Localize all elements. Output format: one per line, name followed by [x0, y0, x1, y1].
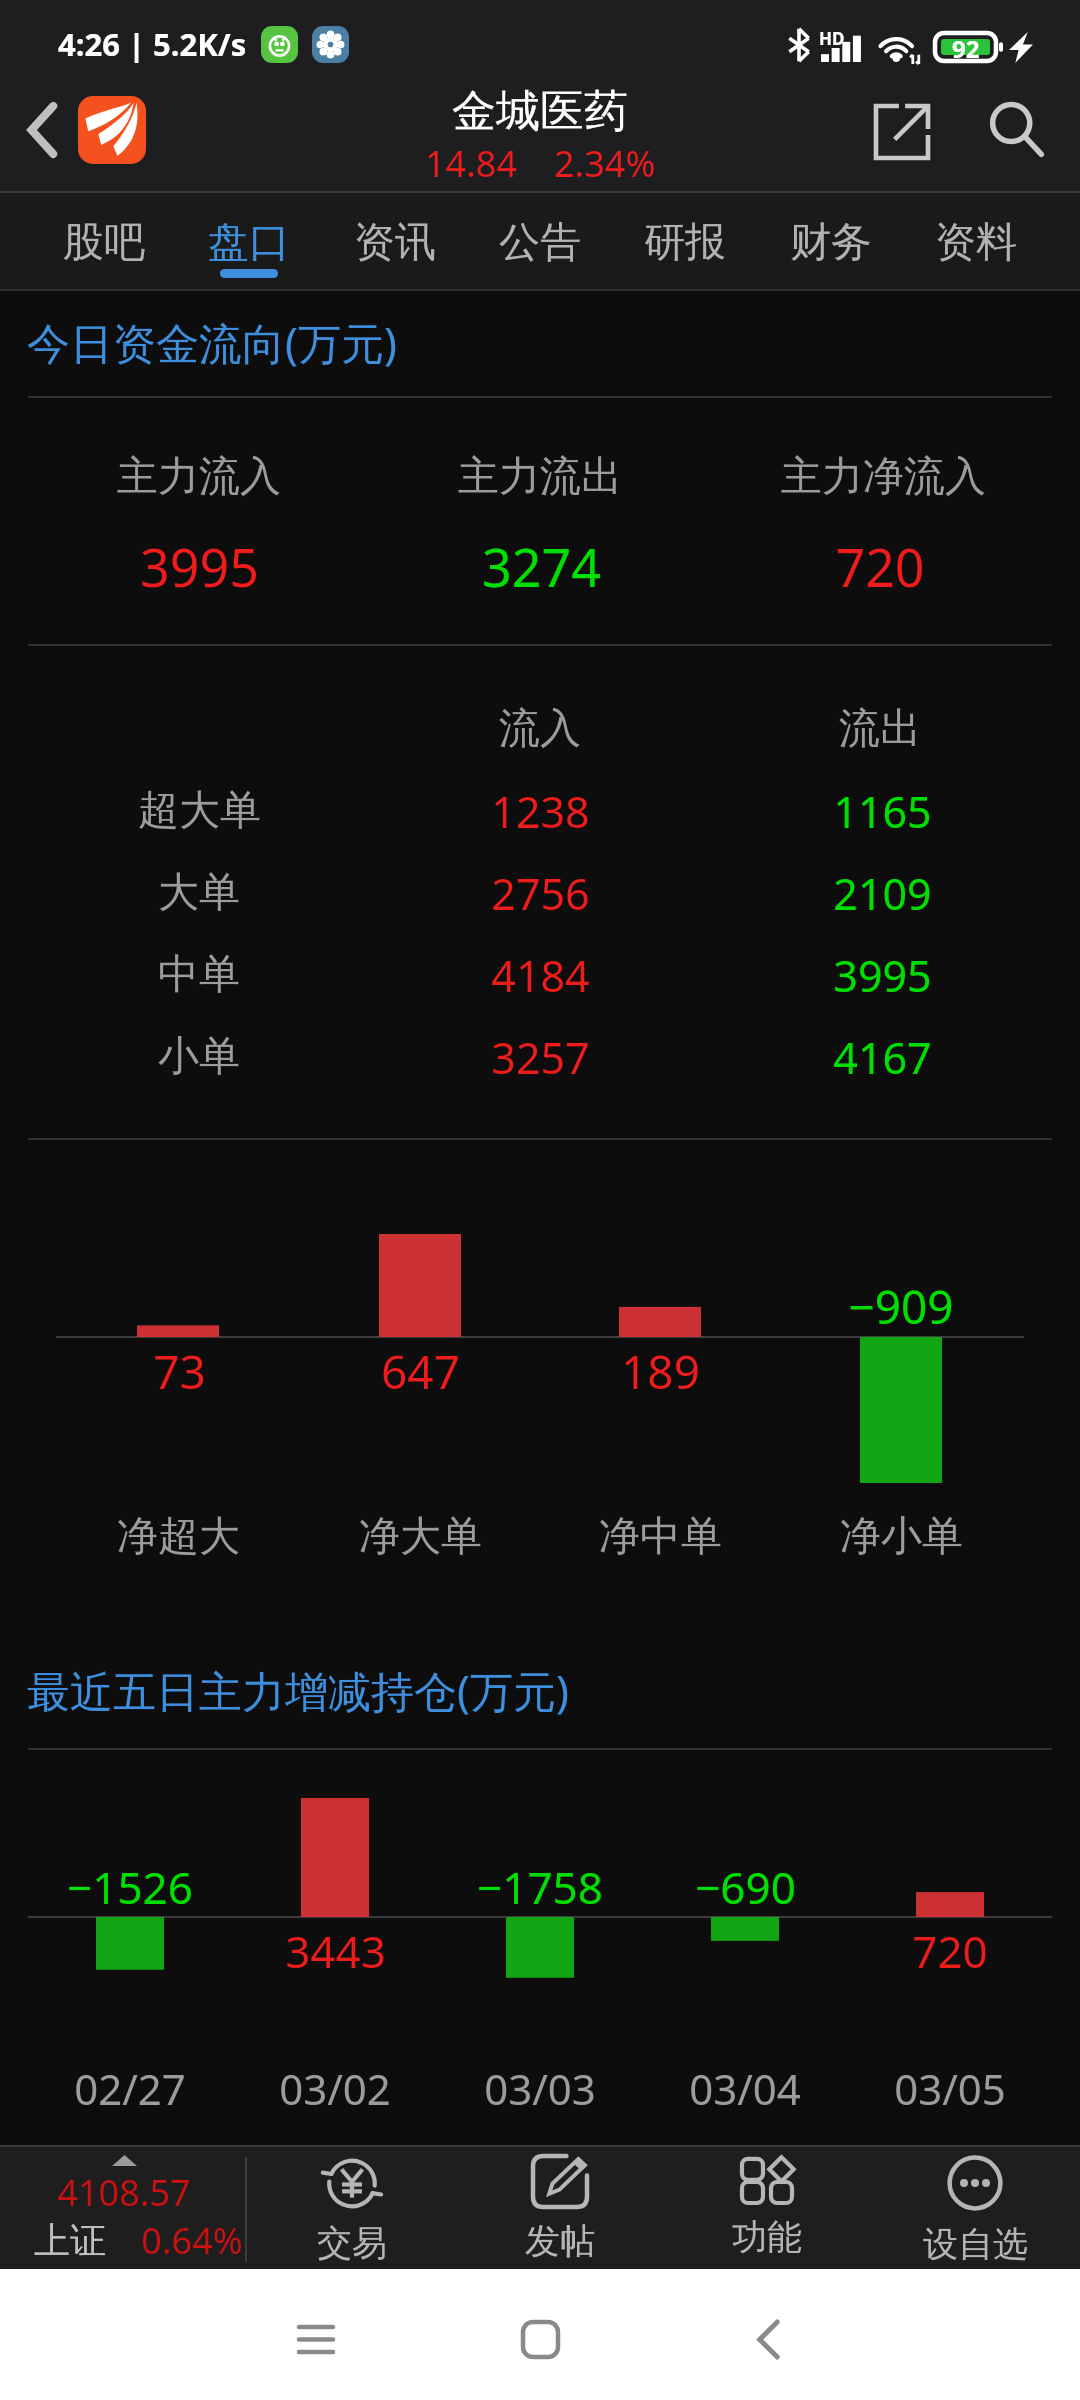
button[interactable]: Share [865, 95, 939, 169]
staticText: 4:26 | 5.2K/s [58, 23, 247, 65]
staticText: 3995 [140, 531, 259, 602]
button[interactable]: 发帖 [456, 2147, 664, 2269]
button[interactable]: 资讯 [323, 193, 467, 289]
staticText: 03/03 [484, 2060, 596, 2117]
staticText: 交易 [317, 2221, 387, 2265]
staticText: 主力流入 [117, 451, 281, 503]
button[interactable]: Recents [236, 2269, 396, 2400]
button[interactable]: 公告 [468, 193, 612, 289]
staticText: 720 [912, 1921, 988, 1981]
staticText: 发帖 [525, 2219, 595, 2263]
button[interactable]: Back [8, 95, 78, 165]
staticText: 设自选 [923, 2222, 1028, 2266]
staticText: 财务 [790, 217, 872, 269]
staticText: 720 [835, 531, 925, 602]
button[interactable]: Eastmoney [78, 96, 146, 164]
button[interactable]: Shanghai index [0, 2147, 245, 2269]
staticText: 功能 [732, 2215, 802, 2259]
staticText: −909 [848, 1275, 954, 1338]
staticText: 2.34% [554, 139, 656, 179]
staticText: 金城医药 [452, 84, 628, 139]
button[interactable]: Search [980, 93, 1054, 167]
staticText: −1526 [67, 1857, 193, 1917]
staticText: 03/02 [279, 2060, 391, 2117]
staticText: 资讯 [354, 217, 436, 269]
staticText: 03/04 [689, 2060, 801, 2117]
staticText: 647 [381, 1340, 460, 1403]
button[interactable]: 盘口 [177, 193, 321, 289]
staticText: 盘口 [208, 217, 290, 269]
staticText: 公告 [499, 217, 581, 269]
staticText: 净大单 [359, 1511, 482, 1563]
button[interactable]: 研报 [613, 193, 757, 289]
staticText: −690 [695, 1857, 796, 1917]
staticText: 净中单 [599, 1511, 722, 1563]
staticText: 4184 [491, 946, 590, 1005]
staticText: 2109 [833, 864, 932, 923]
staticText: 资料 [935, 217, 1017, 269]
button[interactable]: Home [460, 2269, 620, 2400]
staticText: 小单 [158, 1031, 240, 1083]
button[interactable]: 小单 [0, 1016, 1080, 1098]
button[interactable]: 功能 [663, 2147, 871, 2269]
button[interactable]: 中单 [0, 934, 1080, 1016]
staticText: 流出 [839, 703, 921, 755]
button[interactable]: 超大单 [0, 770, 1080, 852]
staticText: 4167 [833, 1028, 932, 1087]
button[interactable]: 大单 [0, 852, 1080, 934]
button[interactable]: 股吧 [32, 193, 176, 289]
staticText: 研报 [644, 217, 726, 269]
staticText: HD [819, 27, 845, 50]
staticText: 92 [952, 32, 980, 62]
staticText: 14.84 [425, 139, 518, 179]
staticText: 03/05 [894, 2060, 1006, 2117]
staticText: 3274 [482, 531, 601, 602]
staticText: 净小单 [840, 1511, 963, 1563]
staticText: 3995 [833, 946, 932, 1005]
staticText: 02/27 [74, 2060, 186, 2117]
staticText: 73 [153, 1340, 206, 1403]
staticText: 0.64% [141, 2216, 243, 2265]
button[interactable]: 财务 [759, 193, 903, 289]
staticText: 最近五日主力增减持仓(万元) [27, 1661, 569, 1720]
staticText: 1238 [491, 782, 590, 841]
staticText: 主力净流入 [781, 451, 986, 503]
button[interactable]: 交易 [248, 2147, 456, 2269]
staticText: 上证 [34, 2218, 106, 2263]
button[interactable]: 设自选 [871, 2147, 1079, 2269]
staticText: 股吧 [63, 217, 145, 269]
staticText: −1758 [477, 1857, 603, 1917]
staticText: 3443 [285, 1921, 386, 1981]
staticText: 今日资金流向(万元) [27, 313, 397, 372]
staticText: 超大单 [138, 785, 261, 837]
staticText: 流入 [499, 703, 581, 755]
staticText: 3257 [491, 1028, 590, 1087]
staticText: 主力流出 [458, 451, 622, 503]
staticText: 大单 [158, 867, 240, 919]
staticText: 189 [621, 1340, 700, 1403]
staticText: 净超大 [117, 1511, 240, 1563]
button[interactable]: 资料 [904, 193, 1048, 289]
staticText: 2756 [491, 864, 590, 923]
staticText: 4108.57 [57, 2168, 191, 2217]
button[interactable]: Back [688, 2269, 848, 2400]
staticText: 1165 [833, 782, 932, 841]
staticText: 中单 [158, 949, 240, 1001]
